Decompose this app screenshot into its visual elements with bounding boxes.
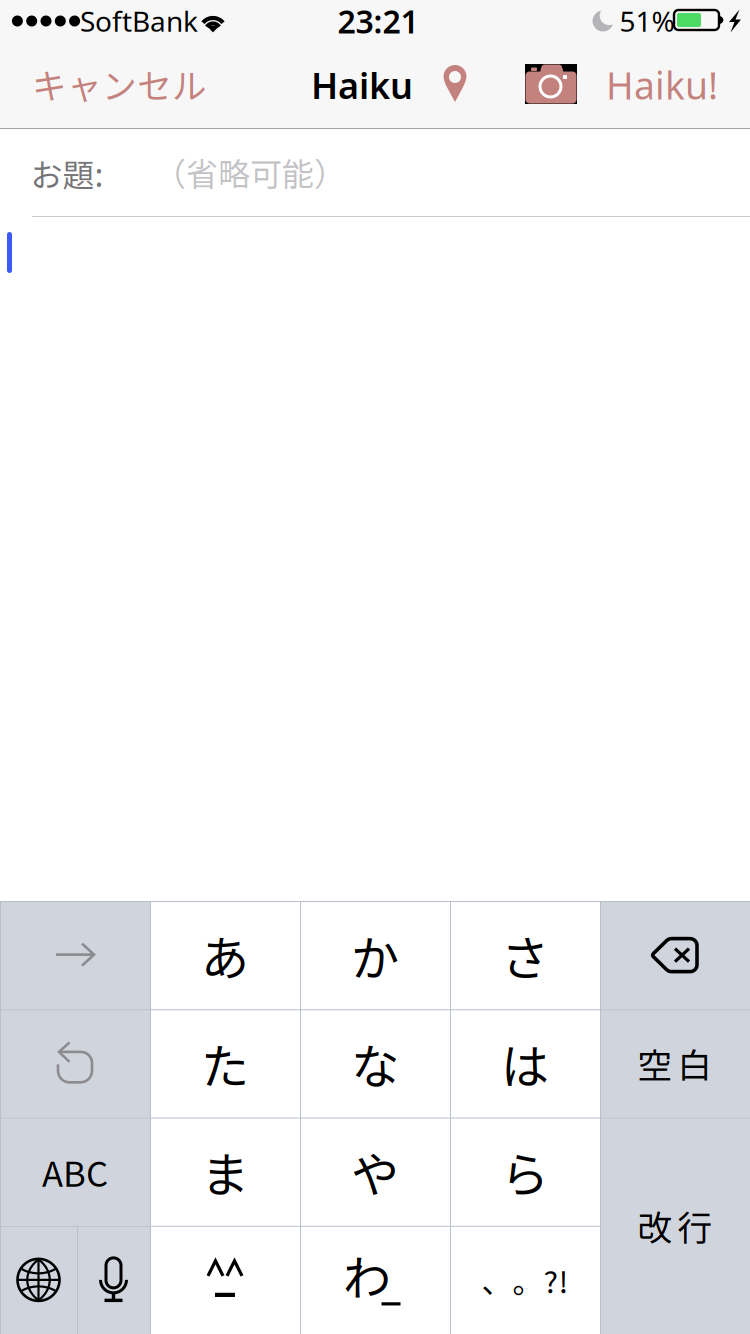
staticText: 空: [637, 1038, 672, 1088]
button[interactable]: ら: [450, 1117, 600, 1226]
button[interactable]: [150, 1226, 300, 1334]
staticText: や: [351, 1137, 399, 1206]
button[interactable]: [600, 901, 750, 1009]
button[interactable]: Location: [425, 39, 485, 127]
staticText: 白: [677, 1038, 712, 1088]
button[interactable]: 、。?!: [450, 1226, 600, 1334]
button[interactable]: Camera: [511, 40, 591, 128]
staticText: な: [351, 1029, 399, 1098]
button[interactable]: 改: [600, 1117, 750, 1334]
button[interactable]: [0, 1226, 77, 1334]
button[interactable]: お題:: [0, 129, 750, 216]
staticText: あ: [201, 920, 249, 990]
staticText: わ: [343, 1240, 391, 1310]
staticText: SoftBank: [80, 2, 198, 40]
staticText: は: [501, 1029, 549, 1098]
button[interactable]: た: [150, 1009, 300, 1117]
button[interactable]: は: [450, 1009, 600, 1117]
staticText: ま: [201, 1137, 249, 1206]
button[interactable]: [0, 1009, 150, 1117]
button[interactable]: や: [300, 1117, 450, 1226]
staticText: か: [351, 920, 399, 990]
staticText: Haiku!: [606, 60, 718, 110]
button[interactable]: あ: [150, 901, 300, 1009]
staticText: さ: [501, 920, 549, 990]
button[interactable]: [0, 901, 150, 1009]
staticText: お題:: [30, 150, 103, 196]
button[interactable]: か: [300, 901, 450, 1009]
staticText: ら: [501, 1137, 549, 1206]
staticText: 51%: [619, 2, 674, 40]
staticText: キャンセル: [32, 59, 207, 109]
button[interactable]: ま: [150, 1117, 300, 1226]
staticText: 行: [677, 1201, 712, 1251]
button[interactable]: ABC: [0, 1117, 150, 1226]
staticText: 、。?!: [481, 1258, 568, 1302]
staticText: た: [201, 1029, 249, 1098]
staticText: Haiku: [311, 61, 413, 109]
button[interactable]: [77, 1226, 150, 1334]
staticText: ABC: [42, 1146, 108, 1197]
staticText: （省略可能）: [154, 149, 346, 195]
button[interactable]: わ: [300, 1226, 450, 1334]
button[interactable]: キャンセル: [32, 40, 208, 128]
button[interactable]: 空: [600, 1009, 750, 1117]
button[interactable]: な: [300, 1009, 450, 1117]
button[interactable]: さ: [450, 901, 600, 1009]
staticText: 23:21: [337, 0, 418, 42]
staticText: 改: [637, 1201, 672, 1251]
button[interactable]: Haiku!: [588, 41, 718, 129]
